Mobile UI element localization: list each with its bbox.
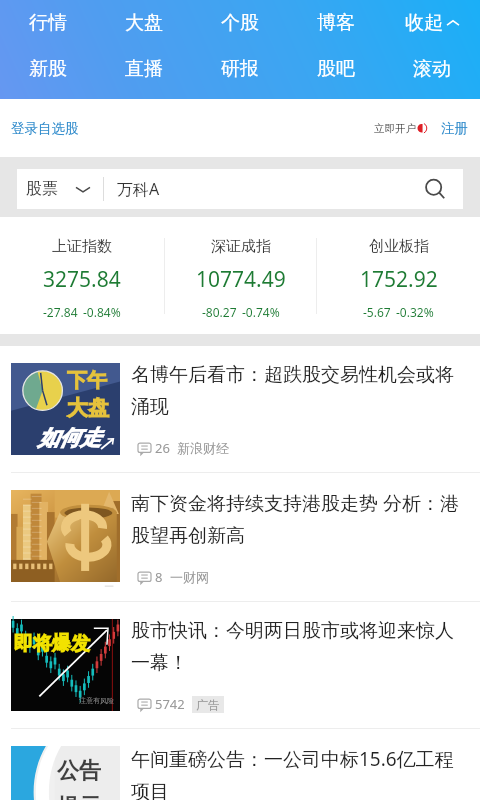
staticText: 登录自选股 <box>11 120 79 137</box>
staticText: 创业板指 <box>369 237 429 256</box>
button[interactable]: 新股 <box>0 57 96 81</box>
staticText: 股市快讯：今明两日股市或将迎来惊人一幕！ <box>131 619 470 675</box>
button[interactable]: 注册 <box>439 99 480 157</box>
staticText: 南下资金将持续支持港股走势 分析：港股望再创新高 <box>131 490 470 548</box>
staticText: -0.84% <box>83 304 121 320</box>
staticText: 大盘 <box>67 395 109 421</box>
staticText: 万科A <box>117 178 160 200</box>
staticText: 午间重磅公告：一公司中标15.6亿工程项目 <box>131 746 470 800</box>
button[interactable]: 登录自选股 <box>0 99 90 157</box>
button[interactable]: 个股 <box>192 11 288 35</box>
staticText: 如何走 <box>38 425 101 451</box>
staticText: 提示 <box>57 793 101 800</box>
staticText: 个股 <box>221 11 259 35</box>
staticText: 公告 <box>57 757 101 785</box>
button[interactable]: 博客 <box>288 11 384 35</box>
staticText: -80.27 <box>202 304 237 320</box>
button[interactable]: 直播 <box>96 57 192 81</box>
staticText: 直播 <box>125 57 163 81</box>
staticText: 10774.49 <box>196 265 286 294</box>
button[interactable]: 即将爆发 <box>0 602 480 728</box>
button[interactable]: 南下资金将持续支持港股走势 分析：港股望再创新高 <box>0 473 480 601</box>
staticText: 新浪财经 <box>177 440 229 456</box>
staticText: 滚动 <box>413 57 451 81</box>
staticText: 26 <box>155 439 170 457</box>
staticText: 上证指数 <box>52 237 112 256</box>
staticText: 注册 <box>441 120 468 137</box>
button[interactable]: 股吧 <box>288 57 384 81</box>
staticText: 行情 <box>29 11 67 35</box>
staticText: -0.74% <box>242 304 280 320</box>
staticText: 收起 <box>405 11 443 35</box>
button[interactable]: 上证指数 <box>0 232 164 320</box>
button[interactable]: 创业板指 <box>317 232 480 320</box>
staticText: 即将爆发 <box>14 632 90 656</box>
button[interactable]: 大盘 <box>96 11 192 35</box>
staticText: 新股 <box>29 57 67 81</box>
staticText: 1752.92 <box>360 265 438 294</box>
staticText: 3275.84 <box>43 265 121 294</box>
button[interactable]: 公告 <box>0 729 480 800</box>
staticText: 深证成指 <box>211 237 271 256</box>
staticText: -27.84 <box>43 304 78 320</box>
button[interactable]: 立即开户 <box>370 99 433 157</box>
button[interactable]: 深证成指 <box>165 232 316 320</box>
button[interactable]: 行情 <box>0 11 96 35</box>
staticText: 立即开户 <box>374 122 416 135</box>
staticText: 股票 <box>26 179 58 199</box>
staticText: 名博午后看市：超跌股交易性机会或将涌现 <box>131 363 470 419</box>
staticText: -0.32% <box>396 304 434 320</box>
staticText: 一财网 <box>170 569 209 585</box>
staticText: 大盘 <box>125 11 163 35</box>
button[interactable]: 下午 <box>0 346 480 472</box>
button[interactable]: 研报 <box>192 57 288 81</box>
staticText: 研报 <box>221 57 259 81</box>
button[interactable]: 股票 <box>17 169 103 209</box>
staticText: 广告 <box>196 697 220 712</box>
button[interactable]: 收起 <box>384 11 480 35</box>
staticText: 5742 <box>155 695 185 713</box>
staticText: 股吧 <box>317 57 355 81</box>
button[interactable]: 搜索 <box>408 169 463 209</box>
staticText: 注意有风险 <box>79 696 114 705</box>
staticText: 博客 <box>317 11 355 35</box>
staticText: 8 <box>155 568 163 586</box>
staticText: -5.67 <box>363 304 391 320</box>
button[interactable]: 滚动 <box>384 57 480 81</box>
staticText: 下午 <box>67 368 107 393</box>
